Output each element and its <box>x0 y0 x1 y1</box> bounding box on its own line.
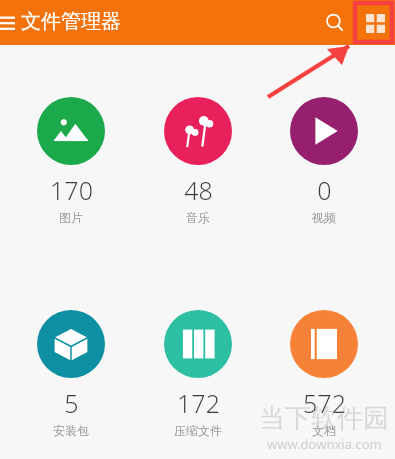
button[interactable]: Menu <box>0 8 21 38</box>
staticText: 文件管理器 <box>21 9 121 34</box>
staticText: 172 <box>177 386 220 420</box>
staticText: 视频 <box>312 210 336 225</box>
button[interactable]: 0 <box>269 97 379 225</box>
staticText: 压缩文件 <box>174 423 222 438</box>
staticText: 当下软件园 <box>259 402 389 435</box>
staticText: 0 <box>317 173 332 207</box>
button[interactable]: 5 <box>16 310 126 438</box>
button[interactable]: Search <box>315 3 355 43</box>
staticText: 5 <box>64 386 79 420</box>
staticText: 170 <box>50 173 93 207</box>
staticText: 48 <box>184 173 213 207</box>
button[interactable]: 170 <box>16 97 126 225</box>
button[interactable]: 572 <box>269 310 379 438</box>
staticText: 安装包 <box>53 423 89 438</box>
staticText: 文档 <box>312 423 336 438</box>
staticText: 音乐 <box>186 210 210 225</box>
button[interactable]: 48 <box>143 97 253 225</box>
staticText: 图片 <box>59 210 83 225</box>
button[interactable]: 172 <box>143 310 253 438</box>
staticText: 572 <box>303 386 346 420</box>
button[interactable]: Grid view <box>355 3 395 43</box>
staticText: www.downxia.com <box>267 435 382 453</box>
